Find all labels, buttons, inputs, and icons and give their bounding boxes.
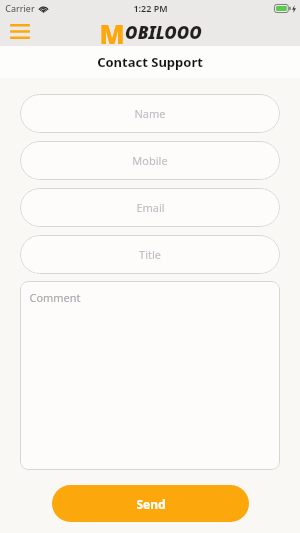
staticText: M	[99, 16, 125, 46]
button[interactable]: Email	[20, 188, 280, 227]
button[interactable]: Send	[52, 485, 249, 522]
staticText: OBILOOO	[125, 21, 202, 44]
button[interactable]: Comment	[20, 281, 280, 470]
staticText: Mobile	[132, 153, 168, 168]
staticText: Name	[134, 106, 166, 121]
staticText: Email	[136, 200, 165, 215]
button[interactable]: Open navigation menu	[4, 18, 36, 44]
button[interactable]: Title	[20, 235, 280, 274]
staticText: Send	[136, 496, 166, 512]
staticText: 1:22 PM	[133, 2, 168, 14]
staticText: Comment	[29, 290, 81, 305]
staticText: Title	[139, 247, 161, 262]
staticText: Carrier	[5, 2, 35, 14]
staticText: Contact Support	[97, 53, 203, 71]
button[interactable]: Mobile	[20, 141, 280, 180]
button[interactable]: Name	[20, 94, 280, 133]
